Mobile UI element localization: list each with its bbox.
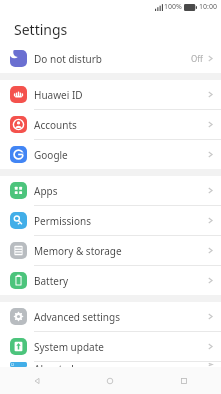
staticText: Battery: [34, 274, 207, 288]
button[interactable]: Permissions: [0, 206, 221, 235]
button[interactable]: Accounts: [0, 110, 221, 139]
staticText: Huawei ID: [34, 88, 207, 102]
button[interactable]: Home: [73, 367, 147, 394]
button[interactable]: Google: [0, 140, 221, 169]
button[interactable]: Memory & storage: [0, 236, 221, 265]
staticText: 100%: [164, 2, 182, 12]
button[interactable]: Recent apps: [147, 367, 221, 394]
staticText: Apps: [34, 184, 207, 198]
staticText: Advanced settings: [34, 310, 207, 324]
staticText: Do not disturb: [34, 52, 191, 66]
staticText: Google: [34, 148, 207, 162]
staticText: Settings: [14, 20, 68, 39]
button[interactable]: Back: [0, 367, 73, 394]
staticText: Permissions: [34, 214, 207, 228]
button[interactable]: Apps: [0, 176, 221, 205]
staticText: Accounts: [34, 118, 207, 132]
button[interactable]: Huawei ID: [0, 80, 221, 109]
staticText: About phone: [34, 362, 207, 367]
button[interactable]: Do not disturb: [0, 44, 221, 73]
staticText: 10:00: [199, 2, 217, 12]
button[interactable]: About phone: [0, 362, 221, 367]
staticText: System update: [34, 340, 207, 354]
staticText: Memory & storage: [34, 244, 207, 258]
button[interactable]: Battery: [0, 266, 221, 295]
button[interactable]: System update: [0, 332, 221, 361]
staticText: Off: [191, 53, 203, 64]
button[interactable]: Advanced settings: [0, 302, 221, 331]
